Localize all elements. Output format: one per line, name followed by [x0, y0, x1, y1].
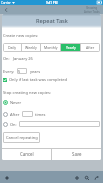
- button[interactable]: Daily: [3, 43, 21, 52]
- staticText: Weekly: [25, 45, 37, 50]
- button[interactable]: Back: [2, 6, 9, 13]
- staticText: times: [35, 112, 46, 117]
- button[interactable]: Never: [3, 100, 22, 105]
- button[interactable]: Save: [52, 148, 101, 160]
- staticText: Monthly: [44, 45, 58, 50]
- staticText: 5: [18, 69, 21, 74]
- button[interactable]: Cancel: [2, 148, 51, 160]
- button[interactable]: [19, 121, 100, 127]
- staticText: Showing: [86, 6, 98, 10]
- staticText: After: [10, 112, 20, 117]
- button[interactable]: Weekly: [22, 43, 40, 52]
- staticText: Save: [72, 151, 82, 157]
- staticText: Create new copies:: [3, 33, 39, 38]
- staticText: On:: [3, 56, 10, 61]
- button[interactable]: [3, 112, 8, 117]
- staticText: After: [86, 45, 95, 50]
- staticText: Only if last task was completed: [9, 77, 67, 82]
- staticText: January 26: [13, 56, 33, 61]
- staticText: years: [30, 69, 41, 74]
- staticText: On:: [10, 122, 17, 127]
- staticText: Repeat Task: [36, 17, 68, 25]
- staticText: Stop creating new copies:: [3, 90, 51, 95]
- button[interactable]: Add: [72, 173, 81, 182]
- button[interactable]: 5: [17, 68, 27, 74]
- staticText: Cancel repeating: [6, 135, 38, 140]
- button[interactable]: Share: [92, 173, 101, 182]
- button[interactable]: Bookmarks: [2, 173, 11, 182]
- button[interactable]: Only if last task was completed: [3, 77, 67, 82]
- button[interactable]: After: [81, 43, 100, 52]
- staticText: Yearly: [66, 45, 76, 50]
- staticText: Never: [10, 100, 22, 105]
- button[interactable]: Cancel repeating: [3, 132, 40, 143]
- button[interactable]: Search: [82, 173, 91, 182]
- button[interactable]: Yearly: [61, 43, 80, 52]
- staticText: Cancel: [20, 151, 34, 157]
- staticText: Carrier: [1, 1, 11, 5]
- staticText: Daily: [8, 45, 17, 50]
- staticText: Active Tasks: [84, 10, 100, 14]
- staticText: 9:41 PM: [46, 1, 58, 5]
- button[interactable]: Monthly: [41, 43, 60, 52]
- staticText: Every:: [3, 69, 15, 74]
- button[interactable]: [22, 111, 33, 117]
- button[interactable]: [3, 122, 8, 127]
